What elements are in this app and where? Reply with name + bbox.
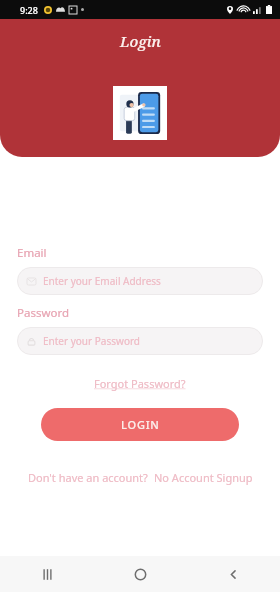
other: Email: [27, 277, 36, 286]
staticText: Don't have an account?: [28, 470, 148, 485]
staticText: Email: [17, 245, 47, 261]
button[interactable]: Forgot Password?: [88, 373, 192, 394]
other: Password: [27, 337, 36, 346]
button[interactable]: No Account Signup: [154, 470, 253, 485]
staticText: Login: [120, 31, 161, 51]
button[interactable]: Password: [17, 327, 263, 355]
button[interactable]: LOGIN: [41, 408, 239, 441]
staticText: Enter your Email Address: [43, 274, 161, 288]
staticText: Enter your Password: [43, 334, 141, 348]
button[interactable]: Back: [187, 556, 280, 592]
button[interactable]: Email: [17, 267, 263, 295]
staticText: 9:28: [20, 4, 38, 16]
staticText: Password: [17, 305, 70, 321]
button[interactable]: Home: [94, 556, 187, 592]
staticText: LOGIN: [121, 417, 160, 432]
button[interactable]: Recents: [0, 556, 94, 592]
